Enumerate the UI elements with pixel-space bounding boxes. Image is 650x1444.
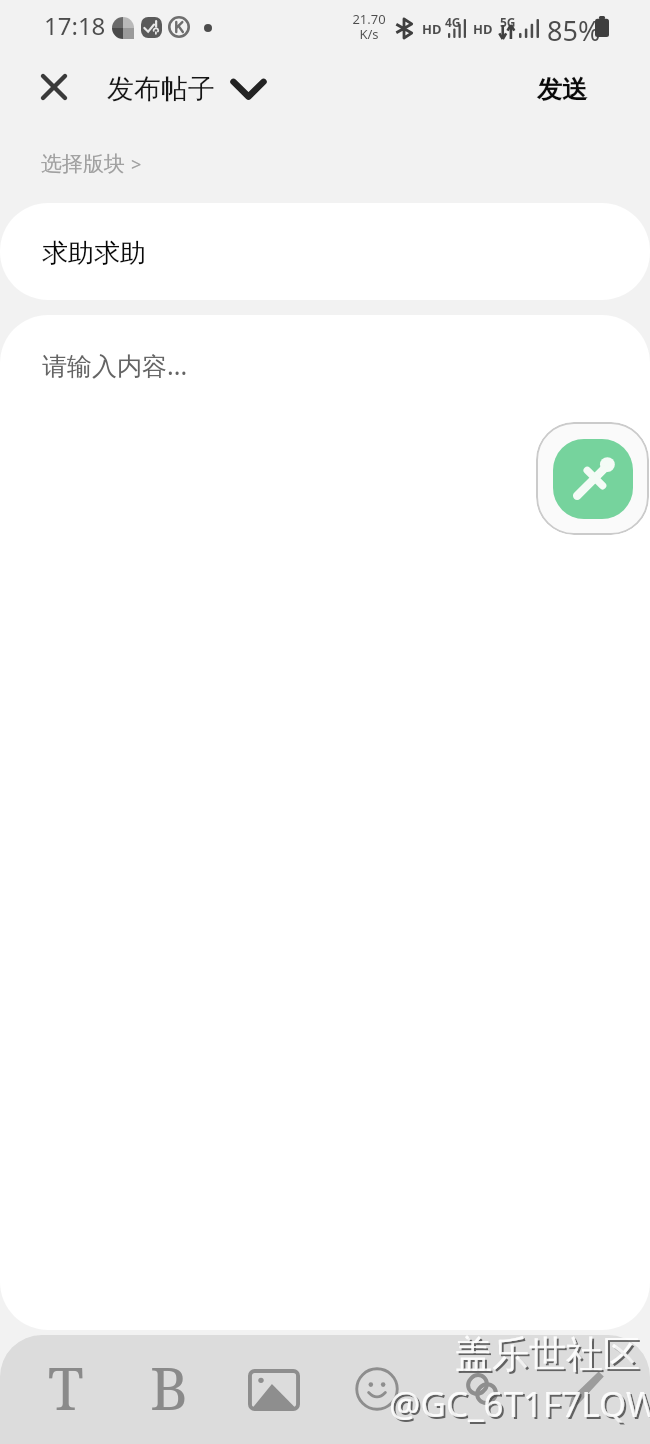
staticText: T — [48, 1348, 84, 1418]
button[interactable]: 发送 — [537, 56, 587, 122]
button[interactable]: 请输入内容... — [0, 315, 650, 1330]
staticText: 盖乐世社区 — [455, 1331, 640, 1378]
staticText: 21.70 K/s — [352, 10, 386, 43]
staticText: 85% — [547, 12, 601, 49]
button[interactable]: Bold — [134, 1348, 204, 1418]
staticText: B — [150, 1348, 188, 1418]
staticText: @GC_6T1F7LQW — [389, 1380, 650, 1428]
staticText: 4G — [445, 14, 461, 30]
staticText: 发布帖子 — [107, 72, 215, 106]
staticText: 请输入内容... — [42, 348, 188, 382]
staticText: > — [131, 152, 142, 177]
staticText: 17:18 — [44, 9, 106, 42]
staticText: HD — [422, 20, 442, 38]
button[interactable]: Draw — [550, 1354, 620, 1424]
button[interactable]: Text style — [31, 1348, 101, 1418]
staticText: HD — [473, 20, 493, 38]
button[interactable]: Close — [24, 57, 84, 117]
button[interactable]: 发布帖子 — [100, 56, 266, 122]
staticText: 5G — [500, 14, 516, 30]
staticText: 发送 — [537, 74, 587, 105]
staticText: @GC_6T1F7LQW — [391, 1382, 650, 1430]
staticText: 求助求助 — [42, 237, 146, 270]
button[interactable]: Insert image — [239, 1355, 309, 1425]
button[interactable]: Color picker — [536, 422, 649, 535]
button[interactable]: 求助求助 — [0, 203, 650, 300]
button[interactable]: 选择版块 — [41, 151, 142, 177]
button[interactable]: Insert link — [447, 1354, 517, 1424]
button[interactable]: Emoji — [342, 1354, 412, 1424]
staticText: 盖乐世社区 — [457, 1333, 642, 1380]
staticText: 选择版块 — [41, 151, 125, 177]
